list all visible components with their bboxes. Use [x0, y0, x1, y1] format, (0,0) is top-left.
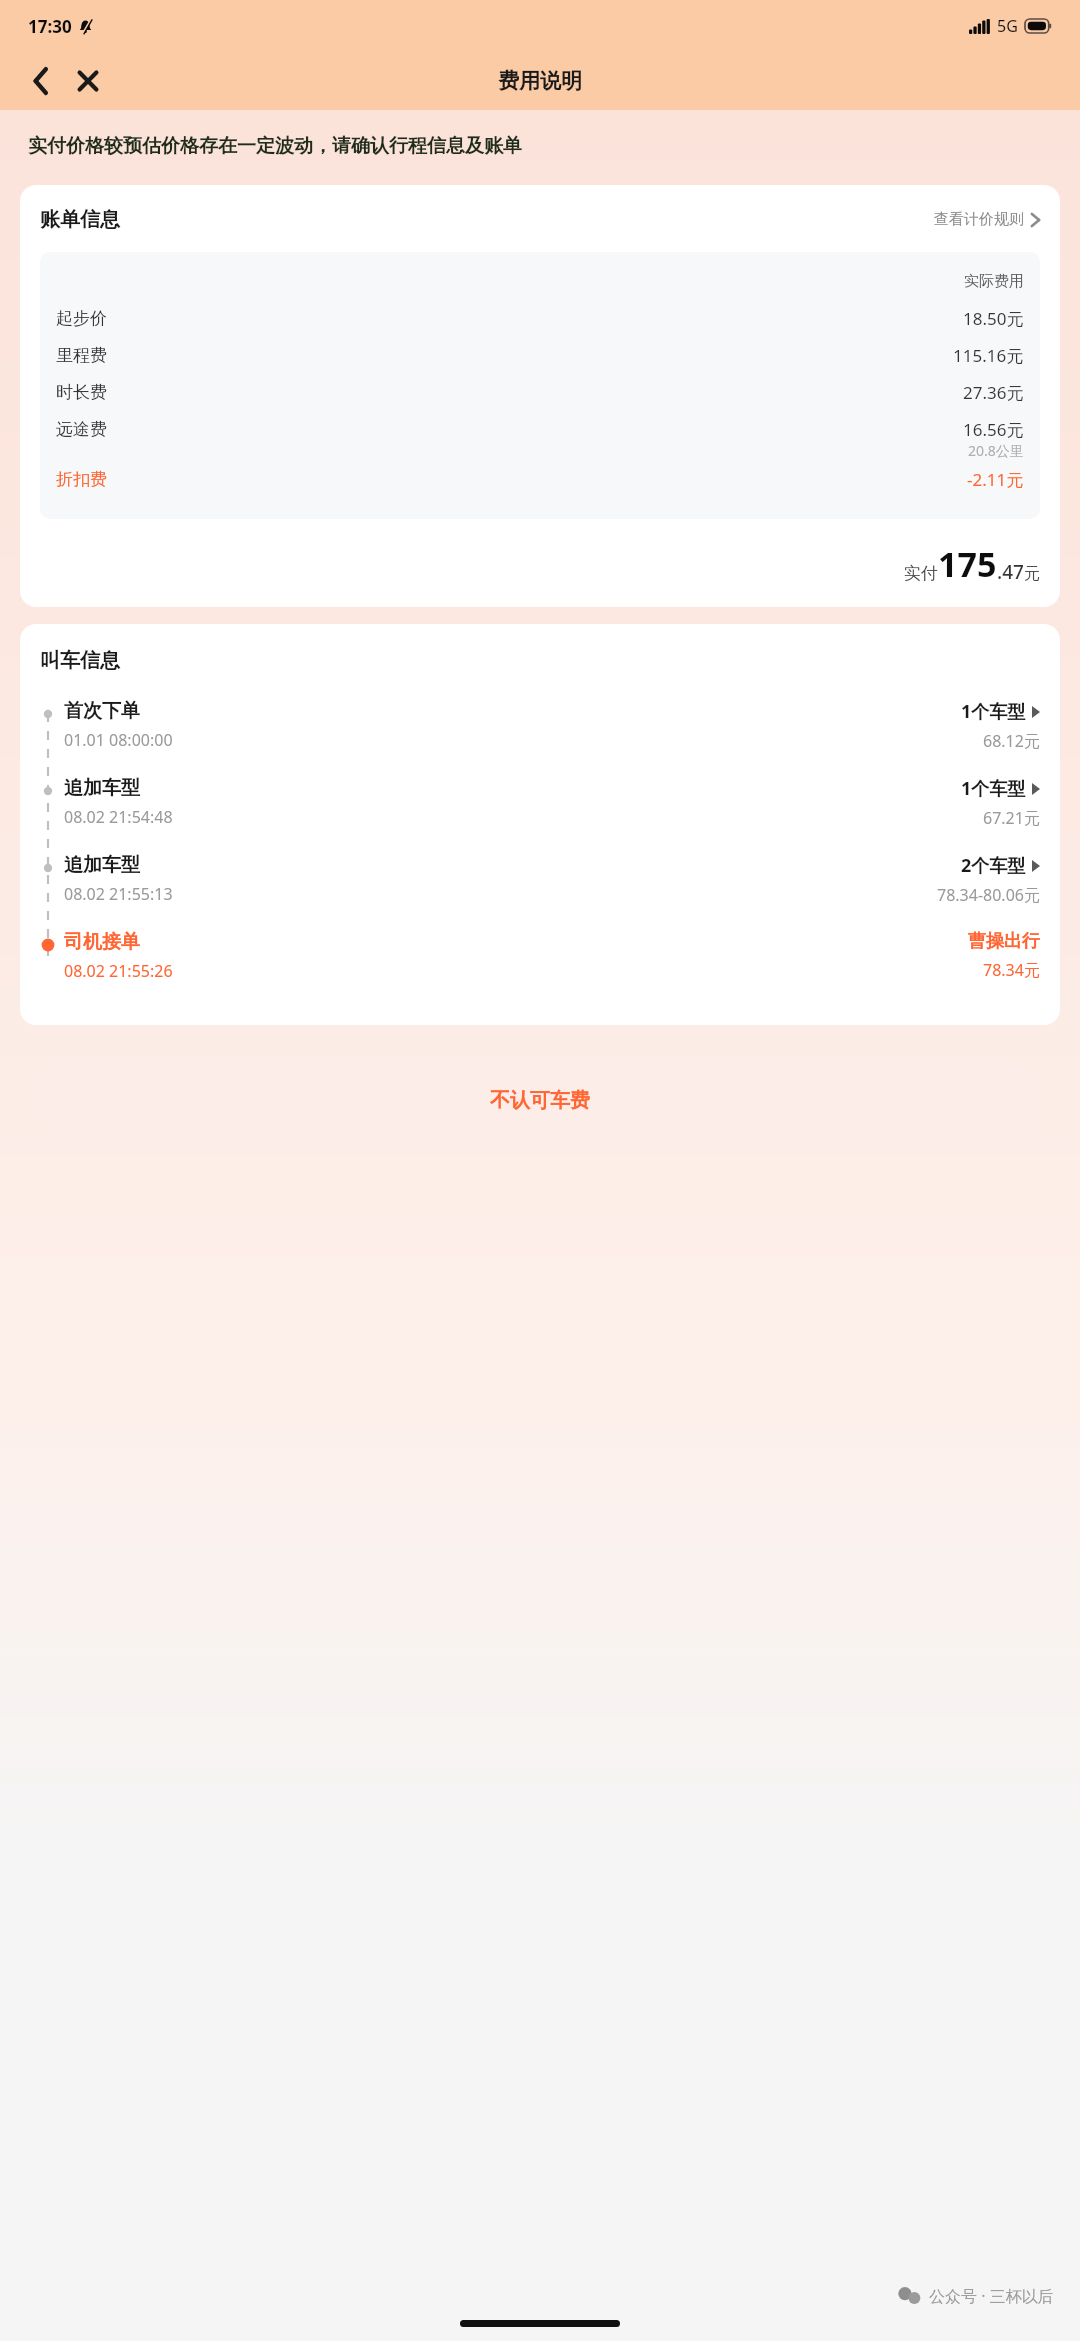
- staticText: 账单信息: [40, 207, 120, 232]
- button[interactable]: 司机接单: [20, 930, 1060, 982]
- staticText: 叫车信息: [40, 648, 120, 673]
- staticText: 元: [1024, 564, 1040, 584]
- button[interactable]: 不认可车费: [36, 1061, 1044, 1140]
- button[interactable]: 追加车型: [20, 776, 1060, 829]
- staticText: 16.56元: [963, 418, 1024, 441]
- staticText: 实际费用: [964, 272, 1024, 291]
- staticText: 5G: [997, 15, 1018, 37]
- staticText: 01.01 08:00:00: [64, 729, 173, 751]
- staticText: 1个车型: [961, 776, 1026, 801]
- button[interactable]: 首次下单: [20, 699, 1060, 752]
- staticText: 远途费: [56, 419, 107, 440]
- staticText: 17:30: [28, 15, 72, 38]
- staticText: 折扣费: [56, 469, 107, 490]
- staticText: 18.50元: [963, 307, 1024, 330]
- staticText: .47: [997, 559, 1024, 585]
- staticText: 追加车型: [64, 776, 140, 800]
- button[interactable]: 查看计价规则: [934, 210, 1040, 229]
- staticText: 费用说明: [498, 68, 582, 94]
- staticText: 67.21元: [983, 807, 1040, 829]
- staticText: 115.16元: [953, 344, 1024, 367]
- staticText: 78.34元: [983, 959, 1040, 981]
- button[interactable]: Back: [18, 59, 62, 103]
- staticText: 首次下单: [64, 699, 140, 723]
- staticText: 追加车型: [64, 853, 140, 877]
- staticText: 起步价: [56, 308, 107, 329]
- staticText: 08.02 21:55:26: [64, 960, 173, 982]
- staticText: 里程费: [56, 345, 107, 366]
- staticText: 1个车型: [961, 699, 1026, 724]
- staticText: 2个车型: [961, 853, 1026, 878]
- staticText: -2.11元: [967, 468, 1024, 491]
- staticText: 78.34-80.06元: [937, 884, 1040, 906]
- staticText: 20.8公里: [968, 441, 1024, 460]
- staticText: 查看计价规则: [934, 210, 1024, 229]
- staticText: 时长费: [56, 382, 107, 403]
- staticText: 实付价格较预估价格存在一定波动，请确认行程信息及账单: [28, 134, 1050, 158]
- staticText: 公众号 · 三杯以后: [929, 2285, 1054, 2307]
- staticText: 08.02 21:54:48: [64, 806, 173, 828]
- staticText: 175: [938, 541, 997, 587]
- staticText: 司机接单: [64, 930, 140, 954]
- button[interactable]: 追加车型: [20, 853, 1060, 906]
- staticText: 不认可车费: [490, 1088, 590, 1113]
- staticText: 08.02 21:55:13: [64, 883, 173, 905]
- staticText: 曹操出行: [968, 930, 1040, 953]
- staticText: 实付: [904, 563, 938, 584]
- button[interactable]: Close: [66, 59, 110, 103]
- staticText: 68.12元: [983, 730, 1040, 752]
- staticText: 27.36元: [963, 381, 1024, 404]
